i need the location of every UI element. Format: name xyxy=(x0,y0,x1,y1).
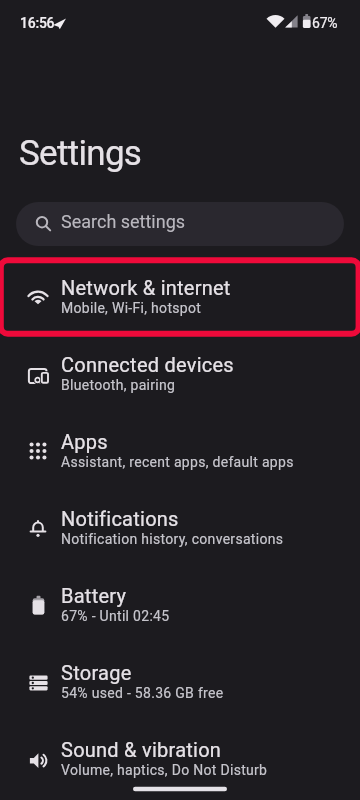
staticText: 16:56 xyxy=(20,15,55,31)
staticText: Sound & vibration xyxy=(61,738,222,761)
staticText: Notifications xyxy=(61,507,179,530)
staticText: Search settings xyxy=(61,211,186,232)
staticText: 67% xyxy=(312,15,338,31)
staticText: Mobile, Wi-Fi, hotspot xyxy=(61,300,202,316)
staticText: Connected devices xyxy=(61,353,234,376)
staticText: 54% used - 58.36 GB free xyxy=(61,685,224,701)
staticText: Assistant, recent apps, default apps xyxy=(61,454,294,470)
staticText: Network & internet xyxy=(61,276,231,299)
staticText: Battery xyxy=(61,584,127,607)
staticText: Apps xyxy=(61,430,108,453)
staticText: Bluetooth, pairing xyxy=(61,377,176,393)
staticText: 67% - Until 02:45 xyxy=(61,608,170,624)
staticText: Settings xyxy=(19,133,142,174)
staticText: Storage xyxy=(61,661,132,684)
staticText: Notification history, conversations xyxy=(61,531,284,547)
staticText: Volume, haptics, Do Not Disturb xyxy=(61,762,268,778)
